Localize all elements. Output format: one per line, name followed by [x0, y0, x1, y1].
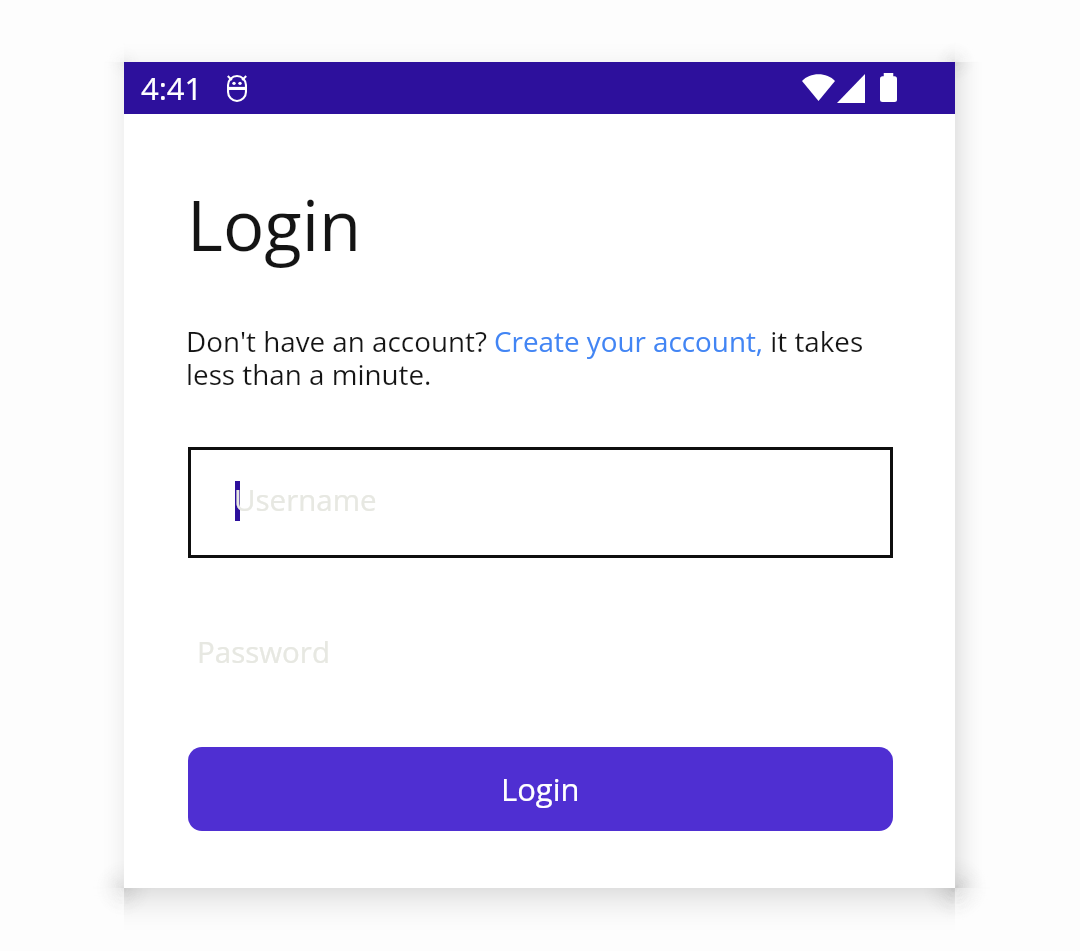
staticText: Username: [234, 479, 377, 519]
staticText: Login: [187, 177, 362, 271]
button[interactable]: Username: [188, 447, 893, 558]
staticText: Don't have an account? Create your accou…: [186, 322, 891, 393]
button[interactable]: Create your account: [494, 322, 760, 355]
other: Android emulator: [227, 75, 247, 102]
staticText: Login: [501, 768, 580, 810]
other: Battery: [880, 73, 897, 102]
staticText: 4:41: [141, 67, 203, 109]
other: Signal: [837, 74, 865, 103]
other: Wi-Fi: [802, 74, 835, 101]
staticText: Password: [197, 631, 330, 671]
button[interactable]: Login: [188, 747, 893, 831]
